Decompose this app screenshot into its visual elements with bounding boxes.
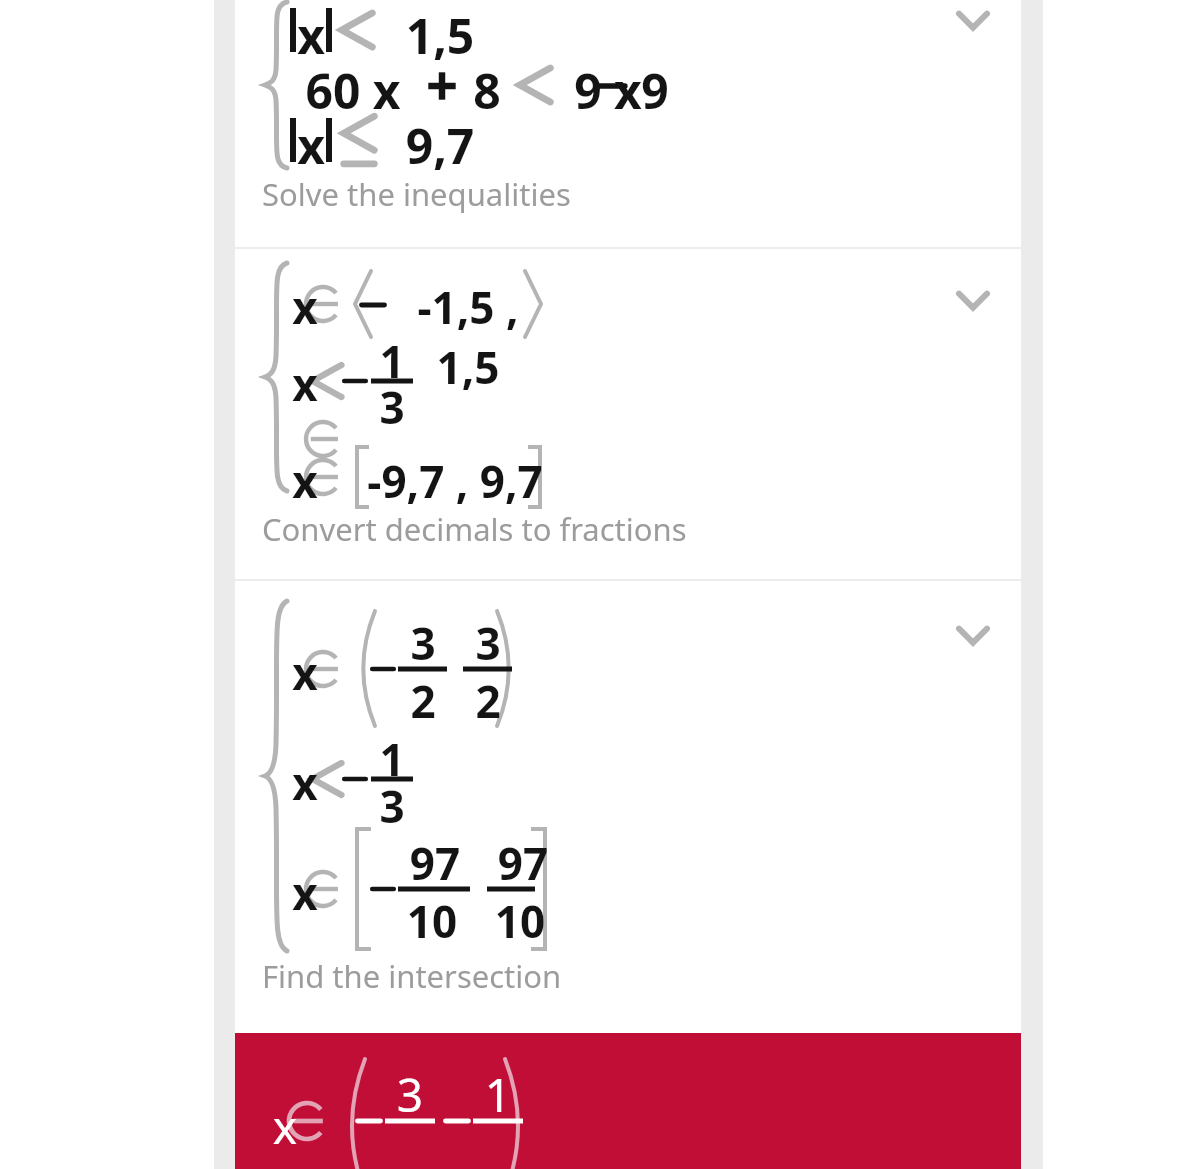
button[interactable]: Final answer (235, 1033, 1021, 1169)
staticText: 3 (372, 776, 412, 836)
staticText: 60 x (283, 58, 423, 123)
staticText: 3 (467, 613, 509, 673)
button[interactable]: x (235, 249, 1021, 579)
staticText: 9 (625, 58, 685, 123)
staticText: 9 x (553, 58, 663, 123)
staticText: 8 (457, 58, 517, 123)
staticText: Convert decimals to fractions (262, 508, 687, 550)
staticText: 3 (372, 377, 412, 437)
staticText: x (285, 643, 325, 703)
staticText: x (285, 753, 325, 813)
staticText: x (265, 1095, 305, 1158)
staticText: 10 (396, 891, 468, 951)
staticText: x (291, 3, 331, 68)
staticText: x (291, 113, 331, 178)
button[interactable]: x (235, 0, 1021, 247)
staticText: 2 (402, 671, 444, 731)
button[interactable]: x (235, 581, 1021, 1032)
staticText: 1 (475, 1063, 521, 1126)
staticText: 3 (402, 613, 444, 673)
staticText: 3 (387, 1063, 433, 1126)
staticText: 1 (372, 729, 412, 789)
staticText: 97 (399, 833, 471, 893)
staticText: x (285, 277, 325, 337)
staticText: 1,5 (380, 3, 500, 68)
staticText: 2 (467, 671, 509, 731)
staticText: Solve the inequalities (262, 173, 571, 215)
staticText: -9,7 , 9,7 (365, 451, 545, 511)
staticText: x (285, 863, 325, 923)
staticText: -1,5 , 1,5 (383, 277, 553, 397)
staticText: 97 (487, 833, 559, 893)
staticText: 1 (372, 331, 412, 391)
staticText: 10 (484, 891, 556, 951)
staticText: x (285, 354, 325, 414)
staticText: x (285, 451, 325, 511)
staticText: Find the intersection (262, 955, 562, 997)
staticText: 9,7 (380, 113, 500, 178)
